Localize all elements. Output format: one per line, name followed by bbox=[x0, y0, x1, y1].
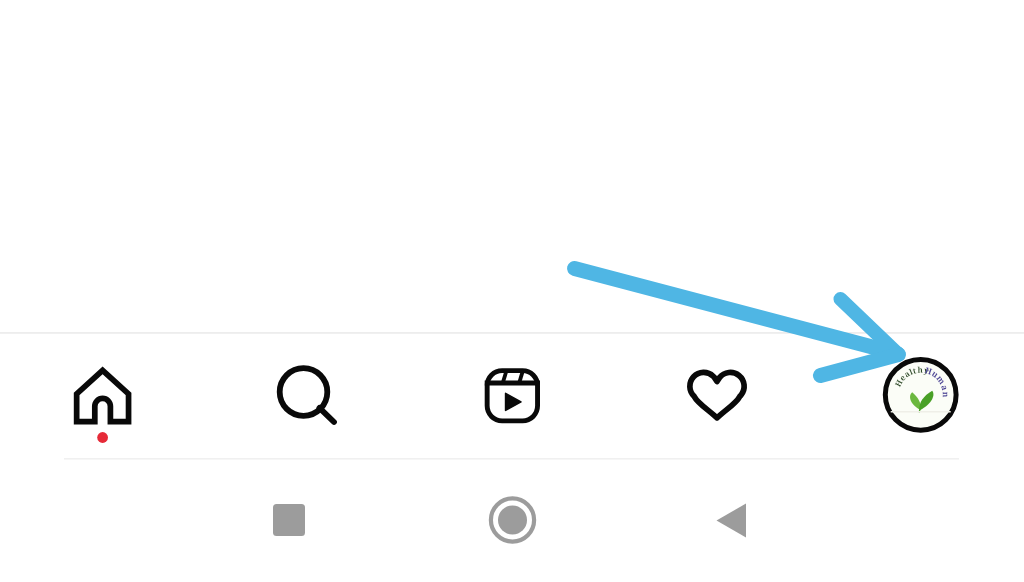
button[interactable]: Back bbox=[624, 460, 1024, 582]
button[interactable]: Likes bbox=[615, 333, 820, 460]
button[interactable]: Home bbox=[0, 333, 205, 460]
button[interactable]: Recent apps bbox=[0, 460, 401, 582]
button[interactable]: Home bbox=[401, 460, 624, 582]
button[interactable]: Search bbox=[205, 333, 406, 460]
button[interactable]: Reels bbox=[406, 333, 615, 460]
button[interactable]: Profile bbox=[820, 333, 1024, 460]
